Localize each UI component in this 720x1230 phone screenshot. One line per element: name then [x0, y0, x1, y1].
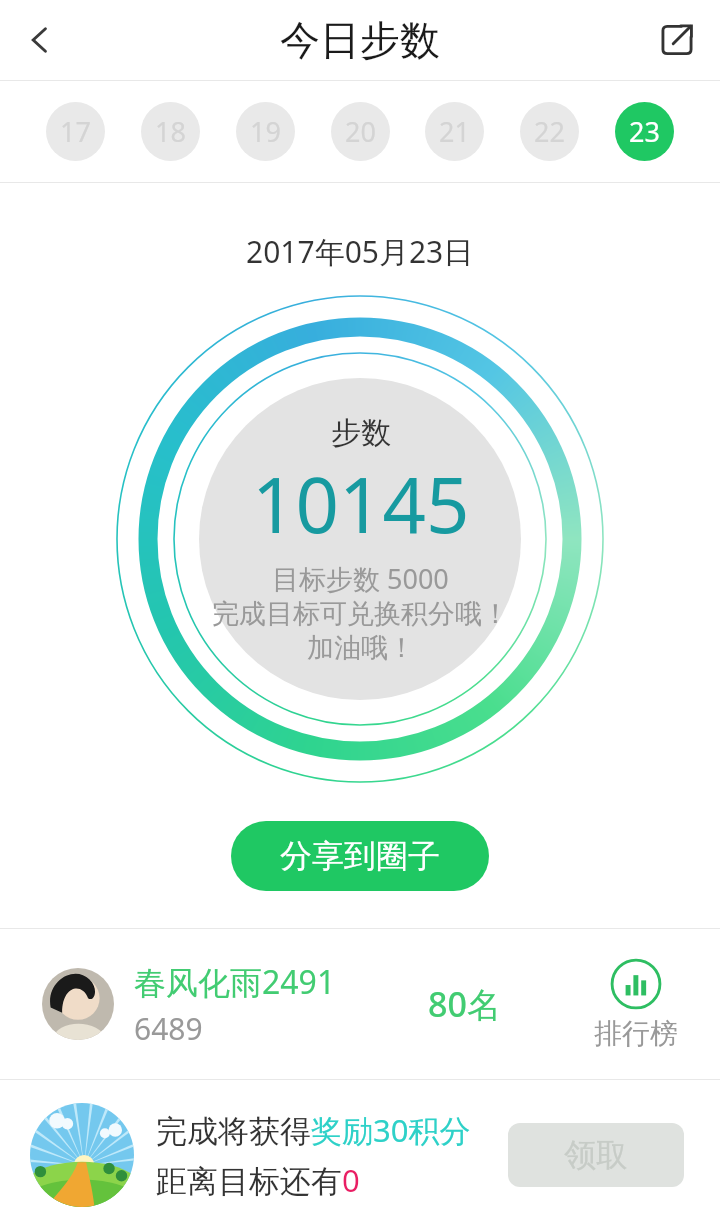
- staticText: 80名: [428, 981, 501, 1027]
- button[interactable]: 排行榜: [594, 958, 678, 1051]
- staticText: 步数: [331, 414, 391, 452]
- staticText: 6489: [134, 1008, 203, 1049]
- staticText: 19: [250, 113, 281, 150]
- staticText: 加油哦！: [307, 631, 415, 665]
- button[interactable]: 领取: [508, 1123, 684, 1187]
- staticText: 领取: [564, 1135, 628, 1175]
- button[interactable]: 20: [331, 102, 390, 161]
- staticText: 春风化雨2491: [134, 960, 336, 1004]
- button[interactable]: 18: [141, 102, 200, 161]
- button[interactable]: 21: [425, 102, 484, 161]
- staticText: 18: [155, 113, 186, 150]
- button[interactable]: Share: [644, 7, 710, 73]
- button[interactable]: 23: [615, 102, 674, 161]
- staticText: 2017年05月23日: [246, 231, 474, 272]
- staticText: 23: [629, 113, 660, 150]
- button[interactable]: 17: [46, 102, 105, 161]
- staticText: 排行榜: [594, 1016, 678, 1051]
- button[interactable]: 19: [236, 102, 295, 161]
- staticText: 目标步数 5000: [272, 560, 449, 597]
- staticText: 今日步数: [280, 15, 440, 65]
- staticText: 距离目标还有0: [156, 1159, 360, 1201]
- button[interactable]: 分享到圈子: [231, 821, 489, 891]
- staticText: 完成目标可兑换积分哦！: [212, 597, 509, 631]
- staticText: 22: [534, 113, 565, 150]
- button[interactable]: 春风化雨2491: [0, 929, 720, 1079]
- button[interactable]: 22: [520, 102, 579, 161]
- staticText: 分享到圈子: [280, 836, 440, 876]
- staticText: 10145: [252, 452, 470, 556]
- staticText: 20: [345, 113, 376, 150]
- button[interactable]: Back: [6, 6, 74, 74]
- staticText: 17: [60, 113, 91, 150]
- staticText: 21: [439, 113, 470, 150]
- staticText: 完成将获得奖励30积分: [156, 1109, 471, 1151]
